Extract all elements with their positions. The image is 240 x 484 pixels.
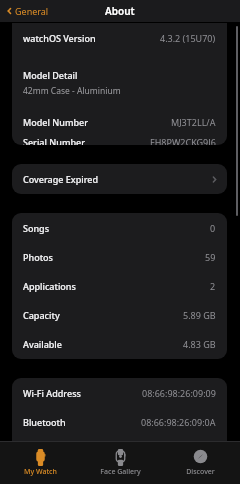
staticText: My Watch bbox=[24, 467, 57, 477]
staticText: Applications bbox=[23, 280, 76, 292]
staticText: 4.3.2 (15U70) bbox=[160, 32, 216, 44]
staticText: 42mm Case - Aluminium bbox=[23, 85, 121, 97]
button[interactable]: Face Gallery bbox=[80, 442, 160, 484]
staticText: Face Gallery bbox=[100, 467, 141, 477]
staticText: 5.89 GB bbox=[183, 309, 216, 321]
button[interactable]: My Watch bbox=[0, 442, 80, 484]
staticText: 0 bbox=[210, 222, 216, 234]
staticText: Serial Number bbox=[23, 136, 85, 145]
staticText: 59 bbox=[205, 251, 216, 263]
staticText: MJ3T2LL/A bbox=[171, 116, 216, 128]
staticText: General bbox=[15, 5, 49, 17]
button[interactable]: Coverage Expired bbox=[12, 164, 227, 194]
button[interactable]: Model Detail bbox=[12, 52, 227, 107]
staticText: 2 bbox=[210, 280, 216, 292]
button[interactable]: Wi-Fi Address bbox=[12, 378, 227, 407]
button[interactable]: Serial Number bbox=[12, 136, 227, 145]
button[interactable]: Songs bbox=[12, 213, 227, 242]
button[interactable]: Applications bbox=[12, 271, 227, 300]
staticText: watchOS Version bbox=[23, 32, 96, 44]
staticText: Photos bbox=[23, 251, 53, 263]
staticText: FH8PW2CKG9J6 bbox=[150, 136, 216, 145]
staticText: 08:66:98:26:09:09 bbox=[142, 387, 216, 399]
button[interactable]: Photos bbox=[12, 242, 227, 271]
button[interactable]: watchOS Version bbox=[12, 23, 227, 52]
staticText: Discover bbox=[186, 467, 215, 477]
staticText: 4.83 GB bbox=[183, 338, 216, 350]
staticText: Wi-Fi Address bbox=[23, 387, 81, 399]
staticText: Bluetooth bbox=[23, 416, 66, 428]
staticText: About bbox=[105, 4, 135, 18]
staticText: Model Detail bbox=[23, 69, 78, 81]
button[interactable]: Model Number bbox=[12, 107, 227, 136]
button[interactable]: Capacity bbox=[12, 300, 227, 329]
button[interactable]: Discover bbox=[160, 442, 240, 484]
staticText: Available bbox=[23, 338, 62, 350]
staticText: Model Number bbox=[23, 116, 88, 128]
staticText: Songs bbox=[23, 222, 50, 234]
button[interactable]: General bbox=[0, 0, 55, 22]
button[interactable]: Bluetooth bbox=[12, 407, 227, 436]
staticText: Capacity bbox=[23, 309, 60, 321]
button[interactable]: Available bbox=[12, 329, 227, 358]
staticText: 08:66:98:26:09:0A bbox=[141, 416, 216, 428]
staticText: Coverage Expired bbox=[23, 173, 99, 185]
